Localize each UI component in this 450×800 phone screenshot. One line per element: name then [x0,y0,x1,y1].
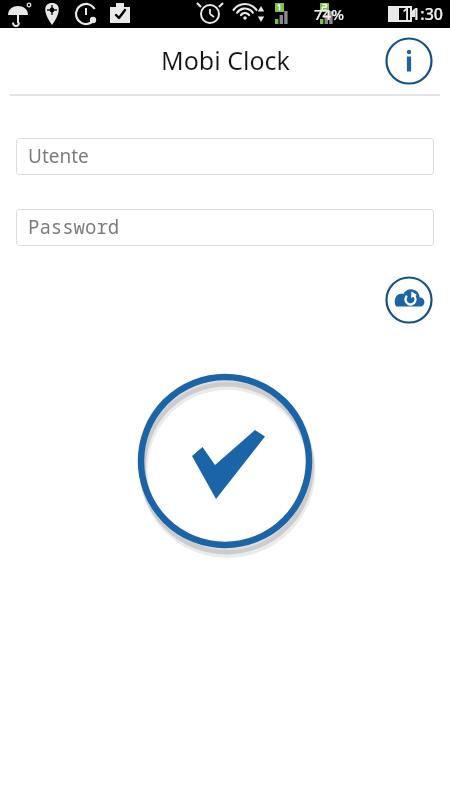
staticText: 74% [314,4,344,24]
button[interactable]: Sync with cloud [385,276,433,324]
button[interactable]: Confirm [130,372,320,562]
staticText: Password [28,214,120,240]
button[interactable]: Info [385,37,433,85]
staticText: Mobi Clock [161,43,290,77]
button[interactable]: Utente [16,138,434,175]
button[interactable]: Password [16,209,434,246]
staticText: Utente [28,143,89,169]
staticText: 11:30 [402,3,443,25]
